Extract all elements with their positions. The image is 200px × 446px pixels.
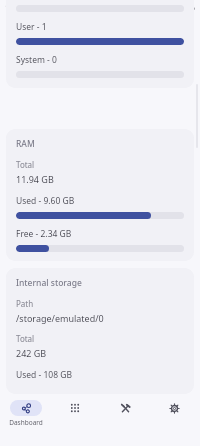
staticText: Internal storage [16,277,82,289]
staticText: Used - 9.60 GB [16,195,75,207]
staticText: RAM [16,138,35,150]
staticText: 17:46 [5,2,25,12]
staticText: Dashboard [9,418,43,427]
staticText: User - 1 [16,21,47,33]
staticText: 40% [182,3,195,12]
staticText: Used - 108 GB [16,369,72,381]
staticText: Total [16,159,35,170]
button[interactable]: Dashboard [2,394,50,427]
staticText: 242 GB [16,347,47,359]
button[interactable]: Apps [51,394,99,416]
staticText: /storage/emulated/0 [16,312,104,324]
staticText: Free - 2.34 GB [16,228,72,240]
button[interactable]: Tools [101,394,149,416]
staticText: Total [16,333,35,344]
staticText: System - 0 [16,54,57,66]
button[interactable]: Settings [150,394,198,416]
staticText: Path [16,298,34,309]
staticText: 11.94 GB [16,173,54,185]
